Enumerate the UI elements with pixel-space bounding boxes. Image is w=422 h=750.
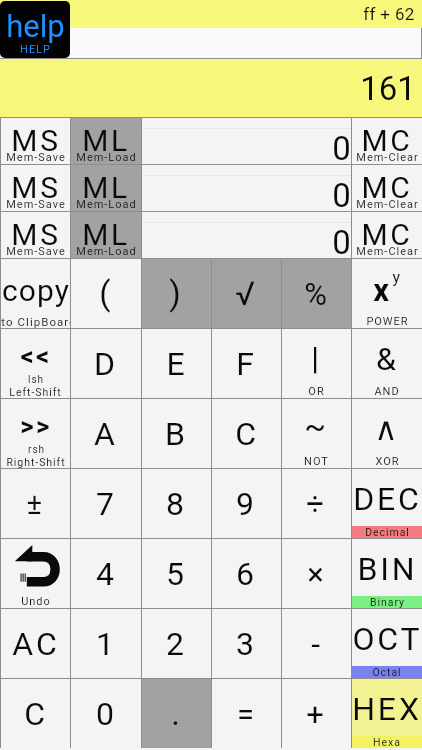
button[interactable]: 5 bbox=[142, 539, 211, 608]
staticText: Mem-Load bbox=[76, 151, 137, 164]
button[interactable]: % bbox=[282, 259, 351, 328]
button[interactable]: √ bbox=[212, 259, 281, 328]
button[interactable]: ~ NOT bbox=[282, 399, 351, 468]
staticText: 161 bbox=[360, 69, 416, 108]
button[interactable]: 8 bbox=[142, 469, 211, 538]
staticText: OCT bbox=[352, 620, 422, 658]
staticText: ML bbox=[82, 123, 130, 158]
button[interactable]: MC Mem-Clear bbox=[352, 165, 422, 211]
button[interactable]: MS Mem-Save bbox=[1, 212, 70, 258]
button[interactable]: copy to ClipBoard bbox=[1, 259, 70, 328]
button[interactable]: + bbox=[282, 679, 351, 748]
staticText: Mem-Clear bbox=[356, 151, 419, 164]
staticText: ÷ bbox=[306, 486, 327, 522]
button[interactable]: A bbox=[71, 399, 141, 468]
button[interactable]: MC Mem-Clear bbox=[352, 118, 422, 164]
button[interactable]: D bbox=[71, 329, 141, 398]
button[interactable]: OCT Octal bbox=[352, 609, 422, 678]
button[interactable]: AC bbox=[1, 609, 70, 678]
staticText: MS bbox=[11, 170, 61, 205]
button[interactable]: × bbox=[282, 539, 351, 608]
staticText: BIN bbox=[357, 550, 418, 588]
button[interactable]: BIN Binary bbox=[352, 539, 422, 608]
staticText: ML bbox=[82, 217, 130, 252]
staticText: Mem-Save bbox=[6, 151, 66, 164]
button[interactable]: F bbox=[212, 329, 281, 398]
staticText: help bbox=[6, 8, 65, 44]
button[interactable]: >> Right-Shift bbox=[1, 399, 70, 468]
button[interactable]: MC Mem-Clear bbox=[352, 212, 422, 258]
staticText: 6 bbox=[236, 555, 257, 593]
button[interactable]: HEX Hexa bbox=[352, 679, 422, 748]
staticText: lsh bbox=[28, 374, 44, 386]
button[interactable]: ML Mem-Load bbox=[71, 212, 141, 258]
button[interactable]: << Left-Shift bbox=[1, 329, 70, 398]
staticText: AC bbox=[12, 625, 60, 663]
button[interactable]: C bbox=[1, 679, 70, 748]
button[interactable]: Undo bbox=[1, 539, 70, 608]
staticText: Octal bbox=[372, 666, 402, 678]
staticText: ML bbox=[82, 170, 130, 205]
staticText: rsh bbox=[28, 444, 45, 456]
staticText: Mem-Clear bbox=[356, 245, 419, 258]
button[interactable]: E bbox=[142, 329, 211, 398]
staticText: 2 bbox=[166, 625, 187, 663]
button[interactable]: 1 bbox=[71, 609, 141, 678]
staticText: ∧ bbox=[374, 410, 401, 447]
button[interactable]: . bbox=[142, 679, 211, 748]
staticText: 5 bbox=[166, 555, 187, 593]
button[interactable]: ) bbox=[142, 259, 211, 328]
staticText: √ bbox=[235, 274, 258, 313]
staticText: + bbox=[306, 696, 327, 732]
staticText: 4 bbox=[96, 555, 117, 593]
button[interactable]: ML Mem-Load bbox=[71, 165, 141, 211]
staticText: F bbox=[236, 345, 257, 383]
button[interactable]: 9 bbox=[212, 469, 281, 538]
staticText: copy bbox=[2, 273, 70, 308]
button[interactable]: DEC Decimal bbox=[352, 469, 422, 538]
button[interactable]: Memory value bbox=[142, 165, 351, 211]
button[interactable]: 6 bbox=[212, 539, 281, 608]
staticText: Mem-Save bbox=[6, 245, 66, 258]
button[interactable]: 2 bbox=[142, 609, 211, 678]
button[interactable]: = bbox=[212, 679, 281, 748]
button[interactable]: 4 bbox=[71, 539, 141, 608]
staticText: HEX bbox=[352, 690, 422, 728]
button[interactable]: MS Mem-Save bbox=[1, 118, 70, 164]
button[interactable]: x to the power of y bbox=[352, 259, 422, 328]
button[interactable]: & AND bbox=[352, 329, 422, 398]
button[interactable]: Memory value bbox=[142, 118, 351, 164]
staticText: 9 bbox=[236, 485, 257, 523]
button[interactable]: | OR bbox=[282, 329, 351, 398]
staticText: Mem-Save bbox=[6, 198, 66, 211]
staticText: = bbox=[237, 696, 257, 732]
staticText: ff + 62 bbox=[363, 4, 415, 24]
staticText: y bbox=[392, 268, 402, 287]
staticText: Decimal bbox=[365, 526, 410, 538]
button[interactable]: 3 bbox=[212, 609, 281, 678]
button[interactable]: 0 bbox=[71, 679, 141, 748]
staticText: Binary bbox=[370, 596, 405, 608]
staticText: 8 bbox=[166, 485, 187, 523]
staticText: B bbox=[165, 415, 188, 453]
staticText: MS bbox=[11, 123, 61, 158]
button[interactable]: ( bbox=[71, 259, 141, 328]
staticText: Hexa bbox=[373, 736, 401, 748]
button[interactable]: Help bbox=[0, 1, 70, 58]
button[interactable]: C bbox=[212, 399, 281, 468]
staticText: C bbox=[24, 695, 48, 733]
button[interactable]: - bbox=[282, 609, 351, 678]
button[interactable]: 7 bbox=[71, 469, 141, 538]
button[interactable]: MS Mem-Save bbox=[1, 165, 70, 211]
button[interactable]: ÷ bbox=[282, 469, 351, 538]
button[interactable]: ± bbox=[1, 469, 70, 538]
staticText: Right-Shift bbox=[6, 456, 66, 468]
staticText: A bbox=[94, 415, 118, 453]
button[interactable]: Memory value bbox=[142, 212, 351, 258]
staticText: 7 bbox=[96, 485, 117, 523]
button[interactable]: ∧ XOR bbox=[352, 399, 422, 468]
staticText: 0 bbox=[96, 695, 117, 733]
button[interactable]: B bbox=[142, 399, 211, 468]
button[interactable]: ML Mem-Load bbox=[71, 118, 141, 164]
staticText: - bbox=[311, 625, 323, 663]
